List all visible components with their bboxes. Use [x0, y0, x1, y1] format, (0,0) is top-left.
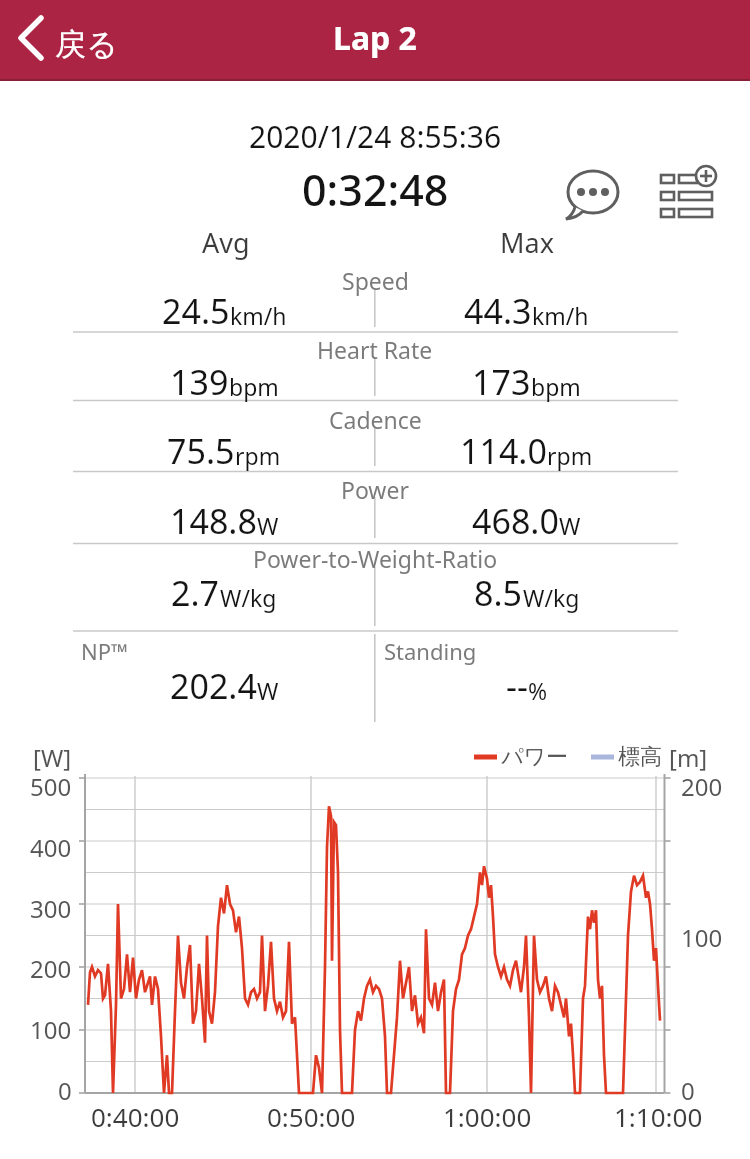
staticText: 0: [58, 1074, 72, 1107]
staticText: %: [528, 675, 548, 706]
staticText: 139: [170, 359, 229, 405]
staticText: Max: [500, 224, 554, 261]
staticText: 戻る: [55, 25, 118, 64]
staticText: Standing: [384, 636, 477, 666]
button[interactable]: [561, 163, 625, 223]
staticText: パワー: [501, 743, 569, 771]
staticText: W/kg: [523, 582, 580, 613]
staticText: 1:00:00: [443, 1099, 532, 1134]
staticText: 100: [681, 921, 723, 954]
staticText: W: [257, 510, 279, 541]
staticText: Heart Rate: [317, 334, 433, 365]
button[interactable]: [652, 160, 724, 222]
staticText: [m]: [669, 741, 708, 774]
staticText: 2.7: [171, 570, 220, 616]
staticText: 0:50:00: [267, 1099, 356, 1134]
staticText: km/h: [532, 300, 589, 331]
staticText: bpm: [229, 371, 279, 402]
staticText: 200: [681, 770, 723, 803]
staticText: W: [559, 510, 581, 541]
staticText: 148.8: [170, 498, 257, 544]
staticText: 202.4: [170, 663, 257, 709]
staticText: 0:32:48: [302, 160, 449, 219]
staticText: 24.5: [162, 288, 230, 334]
staticText: 0:40:00: [91, 1099, 180, 1134]
staticText: Power-to-Weight-Ratio: [253, 543, 498, 574]
staticText: bpm: [531, 371, 581, 402]
button[interactable]: 戻る: [0, 0, 130, 75]
staticText: 2020/1/24 8:55:36: [249, 116, 502, 157]
staticText: km/h: [230, 300, 287, 331]
staticText: 100: [30, 1013, 72, 1046]
staticText: 500: [30, 770, 72, 803]
staticText: W/kg: [220, 582, 277, 613]
staticText: Lap 2: [333, 16, 417, 60]
staticText: 44.3: [464, 288, 532, 334]
staticText: NP™: [81, 636, 129, 666]
staticText: --: [506, 663, 528, 709]
staticText: 300: [30, 892, 72, 925]
staticText: 400: [30, 831, 72, 864]
staticText: 標高: [618, 743, 662, 771]
staticText: 200: [30, 952, 72, 985]
staticText: 173: [472, 359, 531, 405]
staticText: 114.0: [460, 428, 547, 474]
staticText: 468.0: [472, 498, 559, 544]
staticText: Avg: [202, 224, 250, 261]
staticText: Speed: [342, 265, 409, 296]
staticText: W: [257, 675, 279, 706]
staticText: rpm: [235, 440, 281, 471]
staticText: 8.5: [474, 570, 523, 616]
staticText: 1:10:00: [614, 1099, 703, 1134]
staticText: Power: [341, 474, 409, 505]
staticText: 0: [681, 1074, 695, 1107]
staticText: rpm: [547, 440, 593, 471]
staticText: [W]: [33, 741, 72, 774]
staticText: 75.5: [167, 428, 235, 474]
staticText: Cadence: [329, 404, 422, 435]
